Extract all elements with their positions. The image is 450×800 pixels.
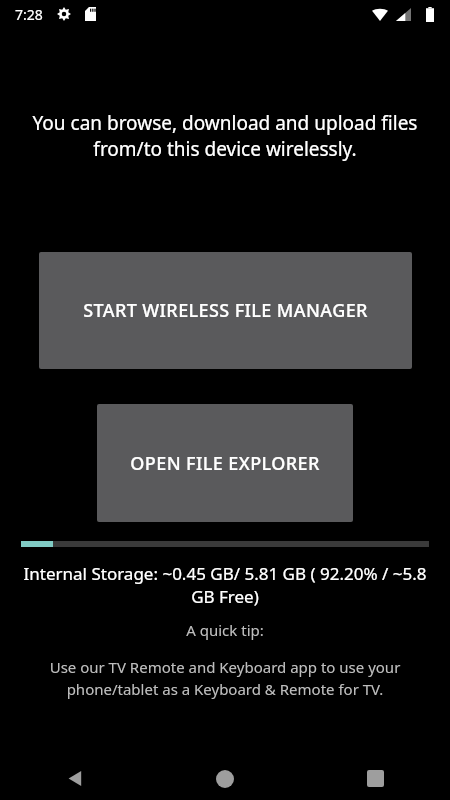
staticText: Use our TV Remote and Keyboard app to us… <box>36 657 414 700</box>
button[interactable]: OPEN FILE EXPLORER <box>97 404 353 522</box>
button[interactable]: START WIRELESS FILE MANAGER <box>39 252 412 369</box>
staticText: You can browse, download and upload file… <box>14 110 436 162</box>
staticText: Internal Storage: ~0.45 GB/ 5.81 GB ( 92… <box>18 562 432 608</box>
button[interactable]: Back <box>0 757 150 800</box>
staticText: A quick tip: <box>0 620 450 640</box>
staticText: OPEN FILE EXPLORER <box>130 451 320 476</box>
button[interactable]: Recent apps <box>300 757 450 800</box>
staticText: 7:28 <box>15 5 43 24</box>
staticText: START WIRELESS FILE MANAGER <box>83 298 368 323</box>
button[interactable]: Home <box>150 757 300 800</box>
